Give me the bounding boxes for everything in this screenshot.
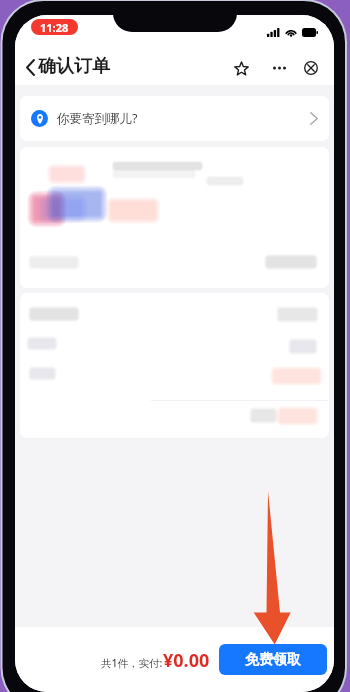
staticText: 共1件，实付: [101,656,163,670]
staticText: ¥0.00 [163,648,210,673]
staticText: 免费领取 [245,651,301,669]
button[interactable]: 免费领取 [219,644,327,675]
button[interactable]: Favorite [229,56,253,80]
button[interactable]: Close [299,56,323,80]
staticText: 你要寄到哪儿? [57,110,138,127]
button[interactable]: Back [18,55,42,79]
staticText: 11:28 [40,20,69,35]
staticText: 确认订单 [38,55,110,78]
button[interactable]: 你要寄到哪儿? [20,96,329,141]
button[interactable]: More options [267,56,291,80]
